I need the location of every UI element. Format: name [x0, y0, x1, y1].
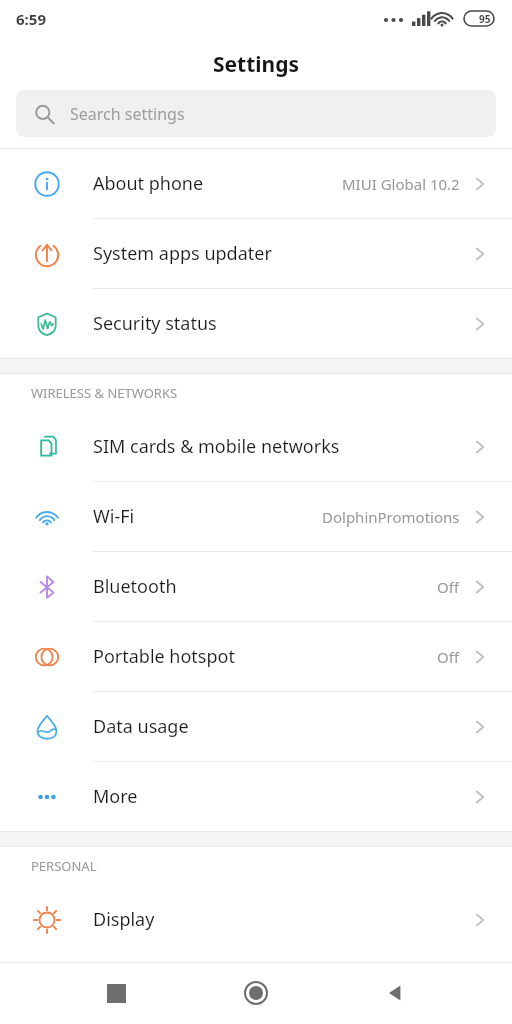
button[interactable]: About phone	[0, 149, 512, 219]
button[interactable]: Portable hotspot	[0, 622, 512, 692]
staticText: Bluetooth	[93, 574, 437, 599]
staticText: 6:59	[16, 9, 46, 29]
button[interactable]: More	[0, 762, 512, 831]
button[interactable]: Back	[372, 969, 420, 1017]
staticText: More	[93, 784, 472, 809]
staticText: MIUI Global 10.2	[342, 174, 460, 194]
button[interactable]: SIM cards & mobile networks	[0, 412, 512, 482]
staticText: PERSONAL	[31, 857, 97, 875]
button[interactable]: Data usage	[0, 692, 512, 762]
staticText: Data usage	[93, 714, 472, 739]
staticText: Settings	[213, 50, 300, 79]
staticText: Off	[437, 577, 460, 597]
staticText: WIRELESS & NETWORKS	[31, 384, 178, 402]
button[interactable]: Search settings	[16, 90, 496, 137]
staticText: Search settings	[70, 103, 185, 125]
button[interactable]: Security status	[0, 289, 512, 358]
staticText: DolphinPromotions	[322, 507, 460, 527]
button[interactable]: Recent apps	[92, 969, 140, 1017]
staticText: Wi-Fi	[93, 504, 322, 529]
staticText: Off	[437, 647, 460, 667]
staticText: Display	[93, 907, 472, 932]
button[interactable]: System apps updater	[0, 219, 512, 289]
staticText: SIM cards & mobile networks	[93, 434, 472, 459]
staticText: 95	[479, 12, 491, 26]
button[interactable]: Wi-Fi	[0, 482, 512, 552]
staticText: Portable hotspot	[93, 644, 437, 669]
staticText: Security status	[93, 311, 472, 336]
staticText: About phone	[93, 171, 342, 196]
button[interactable]: Display	[0, 885, 512, 954]
button[interactable]: Home	[232, 969, 280, 1017]
staticText: System apps updater	[93, 241, 472, 266]
button[interactable]: Bluetooth	[0, 552, 512, 622]
